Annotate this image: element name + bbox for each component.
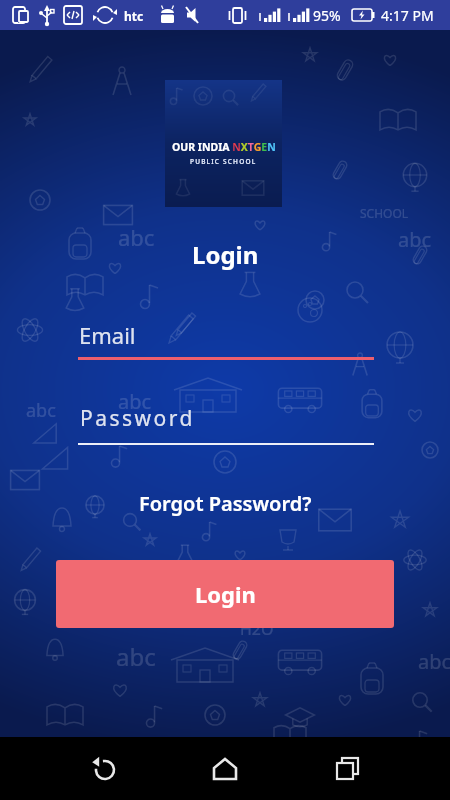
staticText: Login [195, 579, 256, 609]
staticText: abc [26, 398, 56, 423]
staticText: abc [116, 640, 156, 673]
staticText: abc [418, 648, 450, 675]
staticText: Email [79, 320, 136, 350]
button[interactable]: Forgot Password? [135, 486, 315, 520]
staticText: OUR INDIA NXTGEN [172, 140, 276, 154]
staticText: abc [118, 222, 155, 252]
staticText: Password [80, 404, 195, 433]
button[interactable] [185, 737, 265, 800]
staticText: 95% [313, 6, 341, 25]
button[interactable]: Email [56, 315, 394, 360]
staticText: SCHOOL [360, 205, 409, 221]
staticText: Forgot Password? [139, 490, 312, 517]
button[interactable]: Password [56, 402, 394, 445]
staticText: Login [192, 238, 259, 271]
staticText: PUBLIC SCHOOL [190, 157, 257, 166]
button[interactable] [64, 737, 144, 800]
staticText: htc [124, 8, 144, 24]
staticText: H2O [240, 618, 274, 640]
button[interactable]: Login [56, 560, 394, 628]
staticText: abc [398, 226, 432, 253]
button[interactable] [308, 737, 388, 800]
staticText: abc [118, 388, 152, 415]
staticText: 4:17 PM [381, 6, 434, 25]
